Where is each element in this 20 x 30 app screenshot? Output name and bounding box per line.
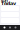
staticText: 9:41 [1, 0, 8, 4]
staticText: Today [1, 0, 16, 7]
